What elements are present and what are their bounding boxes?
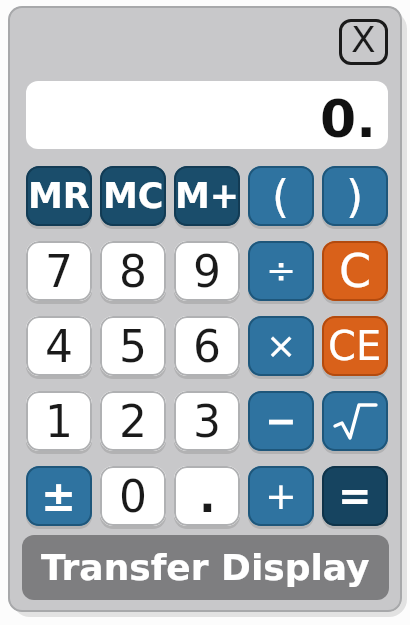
staticText: 6 <box>193 321 221 372</box>
staticText: 9 <box>193 246 221 297</box>
button[interactable]: MC <box>100 166 166 226</box>
button[interactable]: − <box>248 391 314 451</box>
button[interactable]: 2 <box>100 391 166 451</box>
button[interactable] <box>322 391 388 451</box>
staticText: 3 <box>193 396 221 447</box>
staticText: × <box>266 325 297 367</box>
button[interactable]: X <box>339 19 388 65</box>
button[interactable]: 0. <box>26 81 388 149</box>
button[interactable]: 6 <box>174 316 240 376</box>
staticText: MC <box>103 176 164 217</box>
staticText: CE <box>328 323 382 370</box>
staticText: 1 <box>45 396 73 447</box>
button[interactable]: ( <box>248 166 314 226</box>
button[interactable]: CE <box>322 316 388 376</box>
button[interactable]: 8 <box>100 241 166 301</box>
staticText: ) <box>346 171 364 222</box>
button[interactable]: ) <box>322 166 388 226</box>
staticText: C <box>339 244 372 298</box>
button[interactable]: 9 <box>174 241 240 301</box>
button[interactable]: ± <box>26 466 92 526</box>
button[interactable]: 3 <box>174 391 240 451</box>
staticText: ÷ <box>266 250 297 292</box>
staticText: MR <box>28 176 90 217</box>
staticText: 2 <box>119 396 147 447</box>
staticText: 5 <box>119 321 147 372</box>
staticText: ( <box>272 171 290 222</box>
button[interactable]: 7 <box>26 241 92 301</box>
button[interactable]: 4 <box>26 316 92 376</box>
button[interactable]: = <box>322 466 388 526</box>
staticText: M+ <box>175 176 240 217</box>
button[interactable]: 5 <box>100 316 166 376</box>
button[interactable]: Transfer Display <box>22 535 389 600</box>
staticText: 8 <box>119 246 147 297</box>
staticText: 0 <box>119 471 147 522</box>
button[interactable]: 1 <box>26 391 92 451</box>
button[interactable]: MR <box>26 166 92 226</box>
button[interactable]: ÷ <box>248 241 314 301</box>
staticText: ± <box>41 472 77 521</box>
staticText: 7 <box>45 246 73 297</box>
staticText: = <box>338 473 372 520</box>
button[interactable]: + <box>248 466 314 526</box>
staticText: + <box>265 474 297 518</box>
staticText: 4 <box>45 321 73 372</box>
staticText: . <box>199 471 216 522</box>
staticText: Transfer Display <box>41 547 370 589</box>
button[interactable]: . <box>174 466 240 526</box>
button[interactable]: 0 <box>100 466 166 526</box>
button[interactable]: M+ <box>174 166 240 226</box>
button[interactable]: C <box>322 241 388 301</box>
staticText: 0. <box>320 89 376 149</box>
button[interactable]: × <box>248 316 314 376</box>
staticText: X <box>351 19 376 61</box>
staticText: − <box>265 399 297 443</box>
